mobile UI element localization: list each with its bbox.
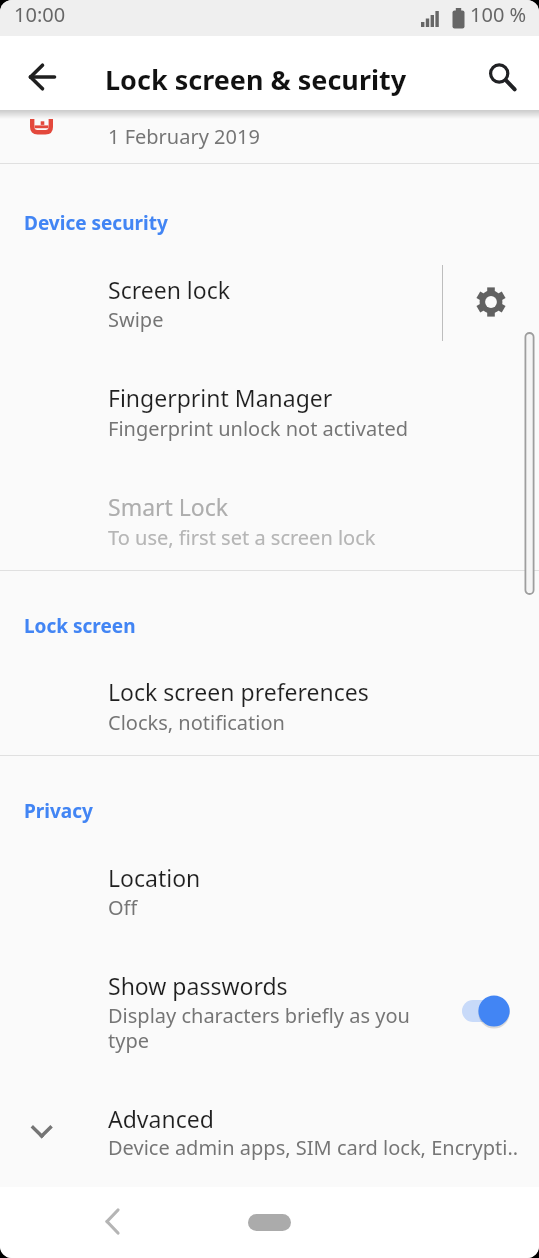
staticText: Privacy bbox=[24, 798, 93, 824]
staticText: Fingerprint Manager bbox=[108, 382, 333, 413]
staticText: type bbox=[108, 1027, 149, 1054]
staticText: Swipe bbox=[108, 306, 164, 333]
button[interactable] bbox=[248, 1214, 291, 1231]
staticText: Lock screen & security bbox=[105, 61, 407, 98]
staticText: 1 February 2019 bbox=[108, 123, 260, 150]
staticText: Screen lock bbox=[108, 274, 231, 305]
staticText: Advanced bbox=[108, 1103, 214, 1134]
staticText: To use, first set a screen lock bbox=[108, 524, 376, 551]
button[interactable] bbox=[0, 1085, 539, 1187]
staticText: Location bbox=[108, 862, 201, 893]
button[interactable] bbox=[0, 255, 440, 350]
staticText: Device admin apps, SIM card lock, Encryp… bbox=[108, 1134, 519, 1161]
staticText: Show passwords bbox=[108, 970, 288, 1001]
button[interactable] bbox=[466, 277, 516, 327]
button[interactable] bbox=[0, 955, 539, 1065]
staticText: 10:00 bbox=[14, 1, 66, 28]
staticText: Off bbox=[108, 894, 138, 921]
button[interactable] bbox=[16, 50, 66, 100]
button[interactable] bbox=[0, 363, 539, 458]
button[interactable] bbox=[0, 843, 539, 938]
staticText: 100 % bbox=[470, 1, 527, 28]
button[interactable] bbox=[0, 657, 539, 752]
staticText: Clocks, notification bbox=[108, 709, 285, 736]
button[interactable] bbox=[88, 1197, 138, 1247]
button[interactable] bbox=[0, 110, 539, 162]
staticText: Display characters briefly as you bbox=[108, 1002, 410, 1029]
staticText: Lock screen preferences bbox=[108, 676, 369, 707]
button[interactable] bbox=[477, 50, 527, 100]
staticText: Fingerprint unlock not activated bbox=[108, 415, 408, 442]
staticText: Lock screen bbox=[24, 613, 136, 639]
staticText: Device security bbox=[24, 210, 168, 236]
staticText: Smart Lock bbox=[108, 491, 229, 522]
